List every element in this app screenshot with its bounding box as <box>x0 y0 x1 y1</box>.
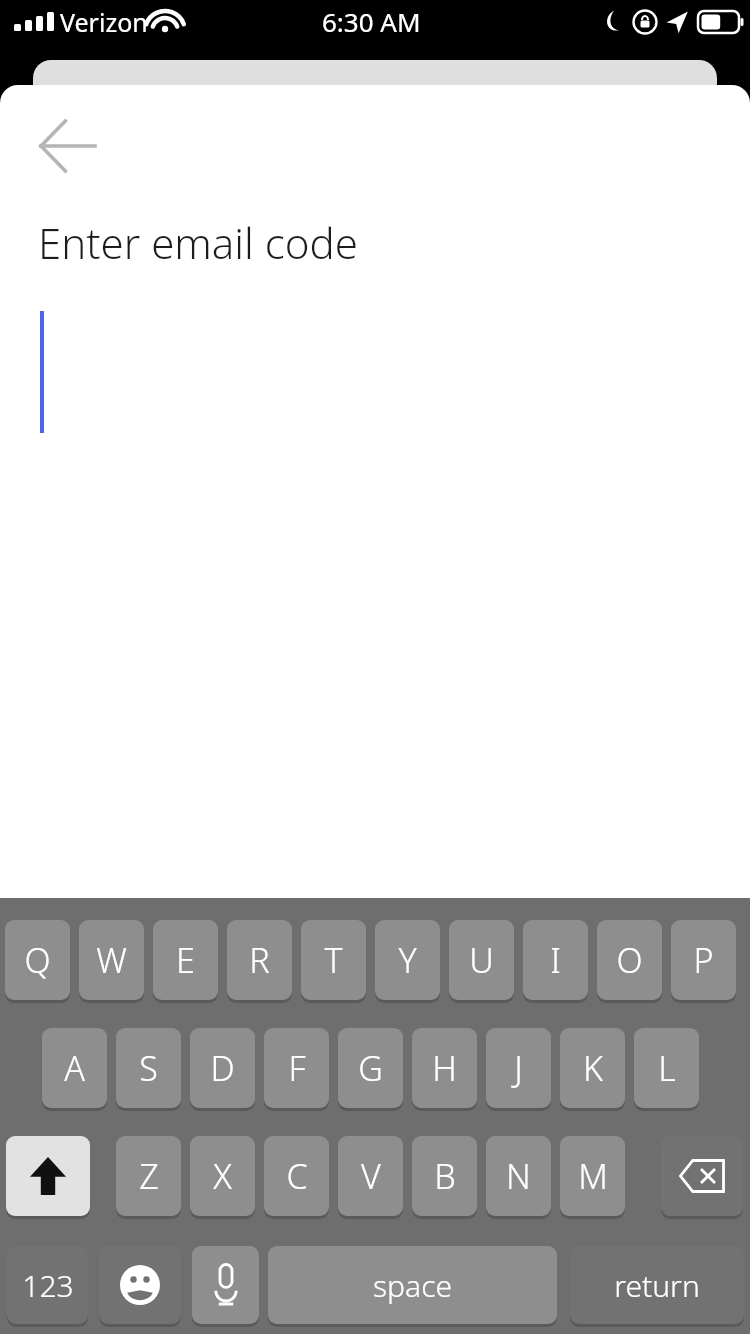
staticText: K <box>583 1045 603 1091</box>
staticText: G <box>358 1045 383 1091</box>
staticText: L <box>658 1045 676 1091</box>
staticText: 6:30 AM <box>322 4 421 39</box>
staticText: R <box>249 937 270 983</box>
button[interactable]: 123 <box>7 1246 88 1324</box>
button[interactable]: C <box>264 1136 329 1216</box>
staticText: J <box>514 1045 523 1091</box>
staticText: N <box>506 1153 531 1199</box>
staticText: V <box>361 1153 381 1199</box>
button[interactable]: D <box>190 1028 255 1108</box>
staticText: Enter email code <box>38 214 358 271</box>
button[interactable]: N <box>486 1136 551 1216</box>
staticText: B <box>434 1153 456 1199</box>
button[interactable]: O <box>597 920 662 1000</box>
button[interactable]: Z <box>116 1136 181 1216</box>
staticText: H <box>432 1045 457 1091</box>
staticText: T <box>324 937 343 983</box>
button[interactable]: Q <box>5 920 70 1000</box>
button[interactable]: L <box>634 1028 699 1108</box>
button[interactable]: V <box>338 1136 403 1216</box>
button[interactable]: G <box>338 1028 403 1108</box>
button[interactable]: Back <box>20 102 114 190</box>
staticText: Y <box>398 937 417 983</box>
button[interactable]: W <box>79 920 144 1000</box>
staticText: S <box>139 1045 158 1091</box>
button[interactable]: B <box>412 1136 477 1216</box>
button[interactable]: M <box>560 1136 625 1216</box>
button[interactable]: return <box>570 1246 744 1324</box>
staticText: X <box>213 1153 232 1199</box>
staticText: E <box>176 937 195 983</box>
staticText: W <box>96 937 127 983</box>
button[interactable]: Dictate <box>192 1246 259 1324</box>
button[interactable]: Y <box>375 920 440 1000</box>
staticText: space <box>373 1265 452 1306</box>
staticText: M <box>578 1153 608 1199</box>
staticText: Z <box>139 1153 159 1199</box>
staticText: O <box>616 937 643 983</box>
button[interactable]: P <box>671 920 736 1000</box>
button[interactable]: K <box>560 1028 625 1108</box>
button[interactable]: S <box>116 1028 181 1108</box>
button[interactable]: F <box>264 1028 329 1108</box>
staticText: Q <box>24 937 51 983</box>
button[interactable]: U <box>449 920 514 1000</box>
staticText: D <box>210 1045 235 1091</box>
staticText: P <box>693 937 714 983</box>
staticText: 123 <box>22 1265 74 1306</box>
button[interactable]: R <box>227 920 292 1000</box>
button[interactable]: H <box>412 1028 477 1108</box>
staticText: F <box>288 1045 306 1091</box>
button[interactable]: Shift <box>6 1136 90 1216</box>
staticText: I <box>550 937 561 983</box>
staticText: return <box>614 1265 700 1306</box>
button[interactable]: space <box>268 1246 557 1324</box>
button[interactable]: J <box>486 1028 551 1108</box>
staticText: C <box>286 1153 308 1199</box>
staticText: A <box>64 1045 85 1091</box>
button[interactable]: E <box>153 920 218 1000</box>
button[interactable]: X <box>190 1136 255 1216</box>
button[interactable]: Emoji <box>99 1246 181 1324</box>
button[interactable]: T <box>301 920 366 1000</box>
button[interactable]: A <box>42 1028 107 1108</box>
button[interactable]: Backspace <box>661 1136 743 1216</box>
staticText: U <box>469 937 494 983</box>
staticText: Verizon <box>60 5 148 39</box>
button[interactable]: I <box>523 920 588 1000</box>
